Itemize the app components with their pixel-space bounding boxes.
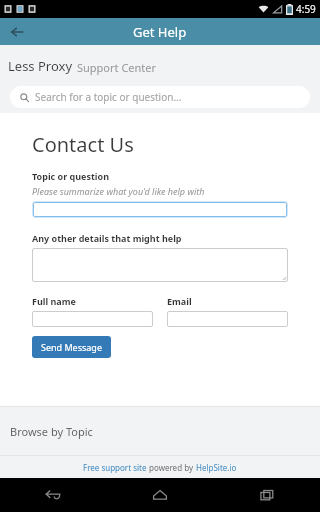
staticText: Any other details that might help xyxy=(32,232,182,244)
button[interactable]: Back xyxy=(0,18,34,45)
button[interactable]: Home xyxy=(106,478,213,512)
button[interactable] xyxy=(32,248,288,282)
staticText: Contact Us xyxy=(32,131,134,158)
button[interactable] xyxy=(33,202,287,217)
button[interactable]: HelpSite.io xyxy=(196,462,237,473)
staticText: Topic or question xyxy=(32,170,110,182)
staticText: Less Proxy xyxy=(8,57,73,75)
button[interactable]: Recent apps xyxy=(213,478,320,512)
staticText: Full name xyxy=(32,295,76,307)
button[interactable]: Send Message xyxy=(32,336,111,358)
staticText: powered by xyxy=(147,462,196,473)
staticText: 4:59 xyxy=(296,2,316,16)
button[interactable] xyxy=(167,311,288,327)
staticText: Send Message xyxy=(41,341,102,353)
button[interactable]: Back xyxy=(0,478,106,512)
staticText: Please summarize what you'd like help wi… xyxy=(32,185,205,197)
staticText: Get Help xyxy=(133,23,187,41)
staticText: Email xyxy=(167,295,192,307)
button[interactable]: Browse by Topic xyxy=(0,407,320,455)
staticText: Browse by Topic xyxy=(10,424,93,439)
staticText: HelpSite.io xyxy=(196,462,237,473)
staticText: Search for a topic or question... xyxy=(35,90,182,104)
button[interactable]: Free support site xyxy=(83,462,147,473)
button[interactable] xyxy=(32,311,153,327)
staticText: Free support site xyxy=(83,462,147,473)
staticText: Support Center xyxy=(77,60,157,75)
button[interactable]: Search for a topic or question... xyxy=(10,86,310,108)
